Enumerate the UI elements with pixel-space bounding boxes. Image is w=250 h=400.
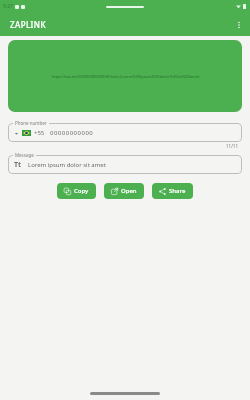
button[interactable]: Tt: [8, 155, 242, 174]
staticText: Lorem ipsum dolor sit amet: [28, 161, 106, 169]
staticText: Share: [169, 187, 186, 195]
button[interactable]: Copy: [57, 183, 96, 199]
staticText: Message: [15, 152, 34, 158]
staticText: ZAPLINK: [10, 19, 46, 30]
staticText: Phone number: [15, 120, 47, 126]
button[interactable]: More options: [228, 14, 250, 36]
staticText: Copy: [74, 187, 89, 195]
staticText: Open: [121, 187, 137, 195]
staticText: 9:27: [3, 3, 13, 10]
button[interactable]: +55: [8, 123, 242, 142]
staticText: +55: [34, 129, 45, 137]
button[interactable]: Open: [104, 183, 144, 199]
staticText: 00000000000: [50, 129, 94, 137]
button[interactable]: Share: [152, 183, 193, 199]
staticText: 11/11: [226, 143, 238, 149]
button[interactable]: https://wa.me/5500000000000?text=Lorem%2…: [8, 40, 242, 112]
staticText: https://wa.me/5500000000000?text=Lorem%2…: [51, 74, 200, 79]
staticText: Tt: [14, 160, 22, 170]
